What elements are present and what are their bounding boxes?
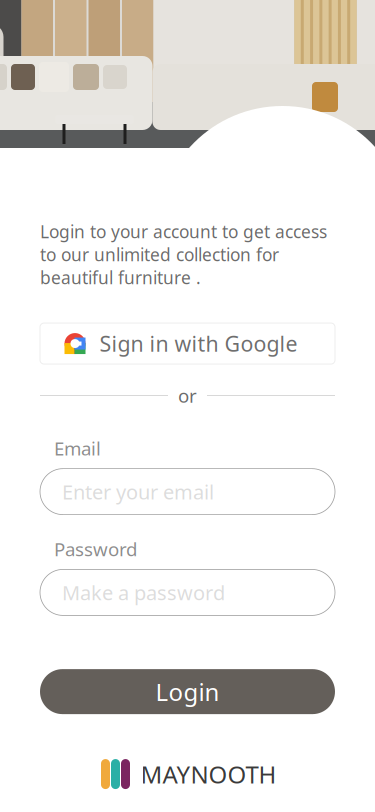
staticText: 9:41 xyxy=(22,0,61,26)
staticText: MAYNOOTH xyxy=(140,758,276,790)
staticText: Login to your account to get access to o… xyxy=(40,220,327,289)
button[interactable]: Login xyxy=(40,669,335,714)
staticText: Login xyxy=(155,676,219,708)
staticText: Make a password xyxy=(62,579,225,606)
staticText: Password xyxy=(54,537,137,561)
staticText: Enter your email xyxy=(62,478,214,505)
staticText: Email xyxy=(54,436,101,461)
staticText: or xyxy=(178,383,197,408)
staticText: Sign in with Google xyxy=(99,329,297,358)
button[interactable]: Sign in with Google xyxy=(40,323,335,364)
